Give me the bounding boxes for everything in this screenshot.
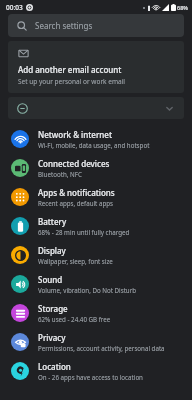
staticText: 00:03 xyxy=(6,3,23,12)
staticText: Storage xyxy=(38,303,68,314)
button[interactable]: Storage xyxy=(0,298,192,327)
button[interactable]: Connected devices xyxy=(0,153,192,182)
button[interactable]: Location xyxy=(0,356,192,385)
staticText: Volume, vibration, Do Not Disturb xyxy=(38,286,137,294)
staticText: Wallpaper, sleep, font size xyxy=(38,257,113,265)
staticText: Connected devices xyxy=(38,158,110,169)
staticText: On - 26 apps have access to location xyxy=(38,373,143,381)
staticText: Permissions, account activity, personal … xyxy=(38,344,165,352)
staticText: Set up your personal or work email xyxy=(18,77,125,86)
staticText: Location xyxy=(38,361,71,372)
staticText: Network & internet xyxy=(38,129,113,140)
staticText: Wi-Fi, mobile, data usage, and hotspot xyxy=(38,141,150,149)
button[interactable]: Add another email account xyxy=(8,41,184,93)
button[interactable]: Expand xyxy=(8,97,184,119)
button[interactable]: Expand xyxy=(163,102,175,114)
staticText: Display xyxy=(38,245,66,256)
staticText: Sound xyxy=(38,274,63,285)
button[interactable]: Search settings xyxy=(8,14,184,37)
button[interactable]: Sound xyxy=(0,269,192,298)
staticText: Bluetooth, NFC xyxy=(38,170,82,178)
staticText: Privacy xyxy=(38,332,66,343)
staticText: Search settings xyxy=(35,20,93,31)
button[interactable]: Network & internet xyxy=(0,124,192,153)
button[interactable]: Apps & notifications xyxy=(0,182,192,211)
button[interactable]: Display xyxy=(0,240,192,269)
staticText: Add another email account xyxy=(18,64,122,75)
button[interactable]: Privacy xyxy=(0,327,192,356)
staticText: Apps & notifications xyxy=(38,187,115,198)
button[interactable]: Battery xyxy=(0,211,192,240)
staticText: 68% xyxy=(177,4,188,11)
staticText: 62% used - 24.40 GB free xyxy=(38,315,111,323)
staticText: Recent apps, default apps xyxy=(38,199,113,207)
staticText: Battery xyxy=(38,216,67,227)
staticText: 68% - 28 min until fully charged xyxy=(38,228,130,236)
